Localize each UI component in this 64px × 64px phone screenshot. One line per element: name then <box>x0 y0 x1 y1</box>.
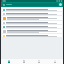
button[interactable]: Saved <box>31 59 47 64</box>
button[interactable] <box>2 34 62 37</box>
button[interactable] <box>2 12 62 15</box>
button[interactable] <box>2 25 62 28</box>
button[interactable] <box>2 29 62 33</box>
button[interactable]: Search <box>2 3 58 6</box>
button[interactable]: Account <box>59 3 62 6</box>
button[interactable]: Profile <box>47 59 63 64</box>
button[interactable]: Explore <box>16 59 31 64</box>
button[interactable] <box>2 8 62 11</box>
button[interactable] <box>2 16 62 20</box>
button[interactable] <box>2 21 62 24</box>
button[interactable]: Home <box>1 59 16 64</box>
